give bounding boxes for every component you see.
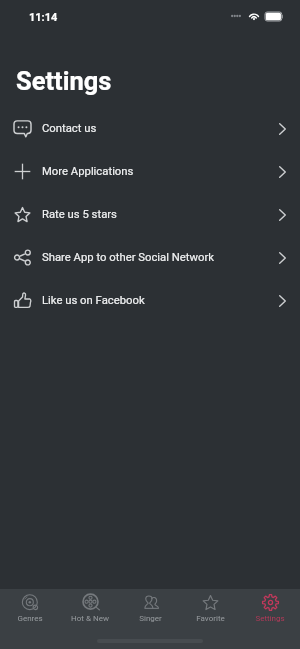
staticText: Settings (255, 614, 285, 623)
button[interactable]: Rate us 5 stars (0, 193, 300, 236)
button[interactable]: Singer (120, 589, 180, 624)
button[interactable]: Favorite (180, 589, 240, 624)
button[interactable]: More Applications (0, 150, 300, 193)
staticText: Contact us (42, 122, 97, 135)
staticText: Favorite (196, 614, 225, 623)
staticText: Genres (17, 614, 43, 623)
staticText: Share App to other Social Network (42, 251, 214, 264)
staticText: Singer (139, 614, 162, 623)
staticText: 11:14 (29, 11, 58, 24)
button[interactable]: Contact us (0, 107, 300, 150)
staticText: Hot & New (71, 614, 109, 623)
button[interactable]: Genres (0, 589, 60, 624)
staticText: More Applications (42, 165, 134, 178)
button[interactable]: Hot & New (60, 589, 120, 624)
staticText: Like us on Facebook (42, 294, 145, 307)
staticText: Rate us 5 stars (42, 208, 117, 221)
button[interactable]: Settings (240, 589, 300, 624)
button[interactable]: Share App to other Social Network (0, 236, 300, 279)
staticText: Settings (16, 66, 112, 96)
button[interactable]: Like us on Facebook (0, 279, 300, 322)
